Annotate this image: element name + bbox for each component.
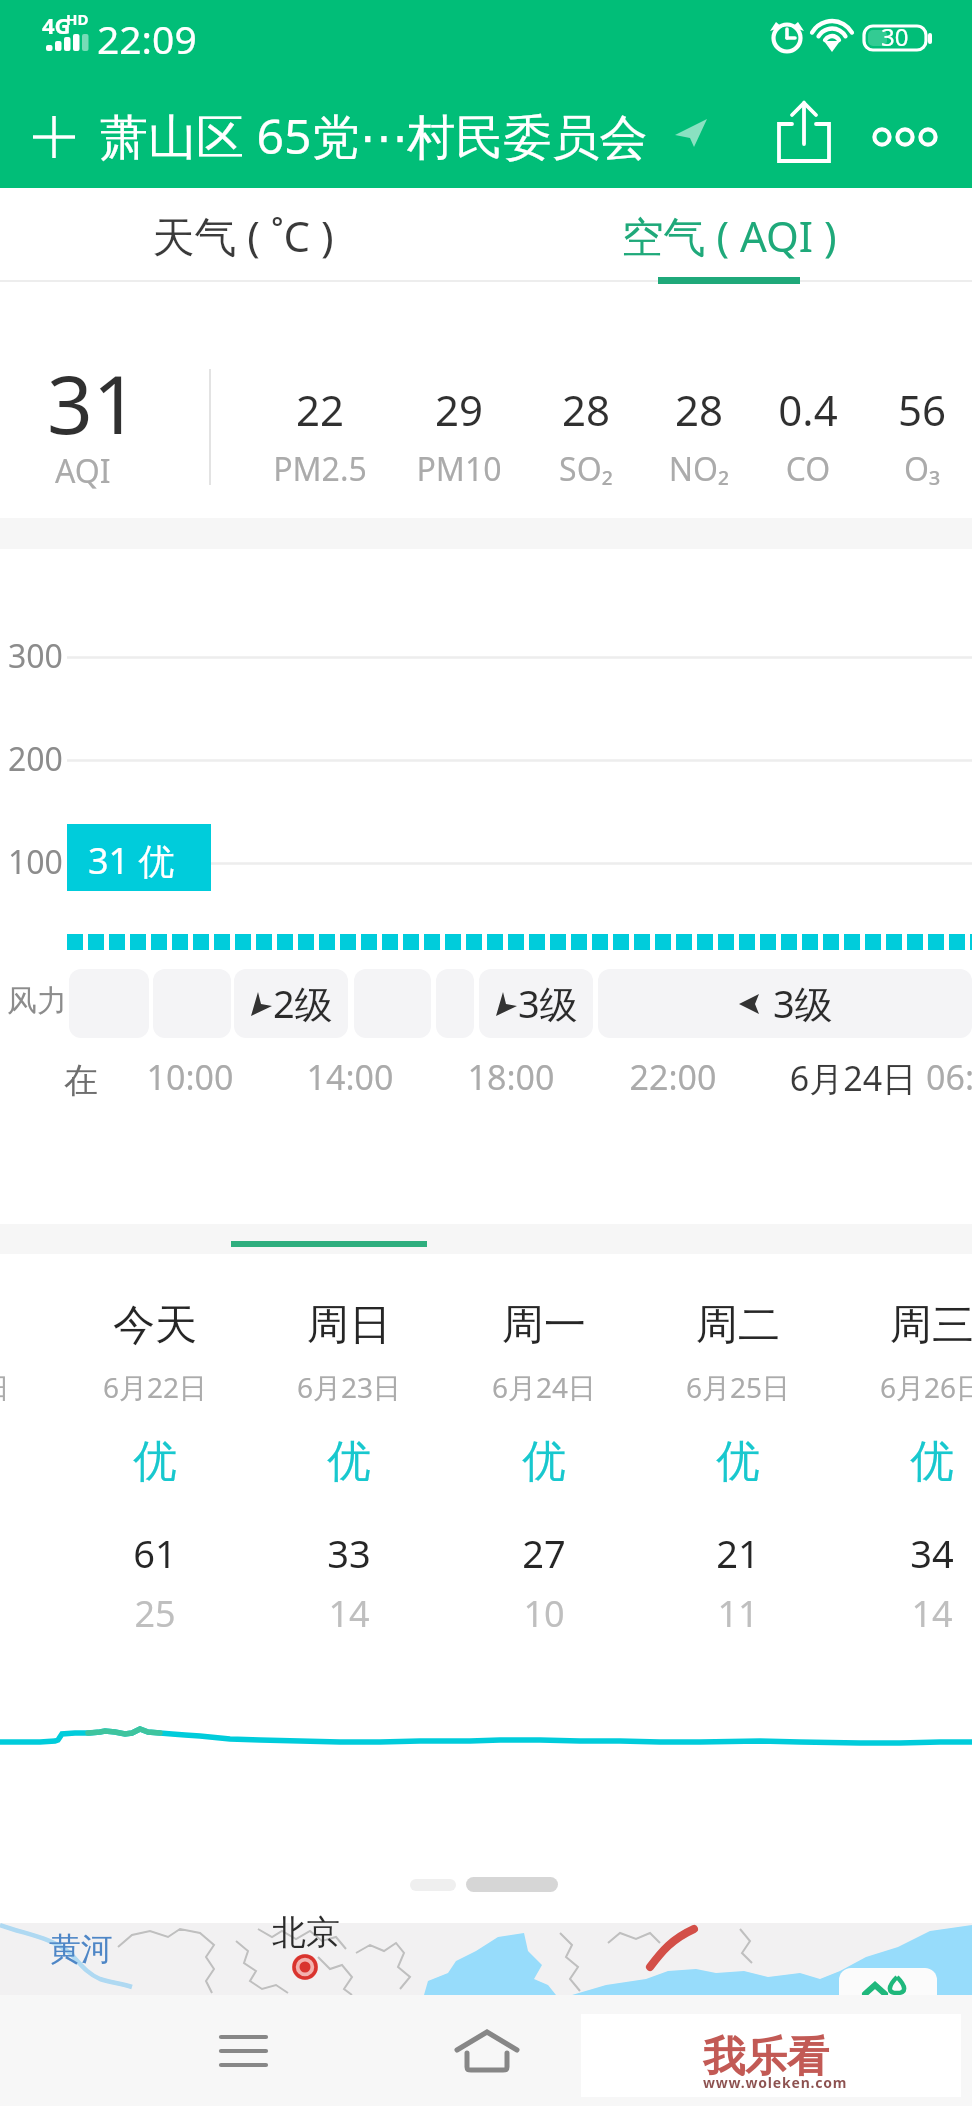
staticText: 6月22日 [35, 1368, 275, 1406]
button[interactable]: 今天 [35, 0, 275, 55]
staticText: 22 [220, 381, 420, 438]
staticText: www.woleken.com [703, 2073, 848, 2092]
staticText: 34 [812, 1527, 972, 1579]
staticText: 周日 [229, 1299, 469, 1352]
staticText: 6月24日 [424, 1368, 664, 1406]
staticText: 22:09 [97, 12, 197, 65]
staticText: 6月26日 [812, 1368, 972, 1406]
staticText: 优 [812, 1434, 972, 1489]
button[interactable]: 3级 [479, 969, 593, 1038]
staticText: 周三 [812, 1299, 972, 1352]
staticText: 10 [424, 1589, 664, 1638]
staticText: 4G [42, 10, 71, 40]
button[interactable]: 周三 [812, 0, 972, 55]
staticText: 30 [881, 20, 909, 53]
button[interactable]: 天气 ( ˚C ) [0, 188, 486, 283]
staticText: 2级 [273, 977, 333, 1029]
staticText: SO₂ [486, 447, 686, 491]
button[interactable]: Recent apps [620, 1995, 846, 2106]
button[interactable]: 空气 ( AQI ) [486, 188, 972, 283]
button[interactable]: Menu [130, 1995, 356, 2106]
button[interactable]: 3级 [598, 969, 972, 1038]
staticText: 28 [599, 381, 799, 438]
button[interactable]: 2级 [234, 969, 348, 1038]
staticText: 14 [812, 1589, 972, 1638]
staticText: 100 [8, 840, 63, 884]
staticText: 6月21日 [0, 1368, 78, 1406]
staticText: 3级 [773, 977, 833, 1029]
staticText: 萧山区 65党⋯村民委员会 [100, 103, 648, 169]
staticText: 200 [8, 737, 63, 781]
staticText: 天气 ( ˚C ) [0, 207, 486, 264]
staticText: 25 [35, 1589, 275, 1638]
button[interactable]: Home [374, 1995, 600, 2106]
staticText: 14 [229, 1589, 469, 1638]
staticText: 风力 [7, 982, 67, 1020]
staticText: PM10 [359, 447, 559, 491]
staticText: 6月23日 [229, 1368, 469, 1406]
staticText: 3级 [518, 977, 578, 1029]
staticText: 优 [424, 1434, 664, 1489]
staticText: HD [66, 9, 89, 29]
staticText: 21 [618, 1527, 858, 1579]
staticText: 优 [35, 1434, 275, 1489]
staticText: 14:00 [230, 1054, 470, 1100]
staticText: 北京 [272, 1911, 340, 1954]
staticText: 61 [35, 1527, 275, 1579]
staticText: 22:00 [553, 1054, 793, 1100]
staticText: 周一 [424, 1299, 664, 1352]
button[interactable]: Map layers [839, 1968, 937, 1995]
staticText: 300 [8, 634, 63, 678]
staticText: 优 [229, 1434, 469, 1489]
button[interactable]: Share [762, 90, 846, 174]
staticText: 6月25日 [618, 1368, 858, 1406]
staticText: 11 [618, 1589, 858, 1638]
staticText: 29 [359, 381, 559, 438]
staticText: 28 [486, 381, 686, 438]
staticText: 27 [424, 1527, 664, 1579]
staticText: 31 优 [88, 836, 175, 885]
staticText: 0.4 [708, 381, 908, 438]
staticText: 优 [618, 1434, 858, 1489]
button[interactable]: 周二 [618, 0, 858, 55]
staticText: 空气 ( AQI ) [486, 207, 972, 264]
button[interactable]: 昨天 [0, 0, 78, 55]
staticText: 在 [0, 1059, 201, 1102]
staticText: 今天 [35, 1299, 275, 1352]
staticText: 18:00 [391, 1054, 631, 1100]
staticText: 31 [47, 348, 139, 457]
staticText: 周二 [618, 1299, 858, 1352]
staticText: 6月24日 [733, 1055, 972, 1101]
staticText: 33 [229, 1527, 469, 1579]
staticText: AQI [55, 449, 111, 493]
button[interactable]: More options [866, 97, 958, 177]
staticText: 黄河 [49, 1929, 113, 1969]
staticText: O₃ [822, 447, 972, 491]
staticText: 我乐看 [703, 2031, 829, 2084]
staticText: NO₂ [599, 447, 799, 491]
staticText: 56 [822, 381, 972, 438]
staticText: CO [708, 447, 908, 491]
staticText: 06: [830, 1054, 972, 1100]
staticText: PM2.5 [220, 447, 420, 491]
staticText: 10:00 [70, 1054, 310, 1100]
button[interactable]: Add city [14, 97, 94, 177]
